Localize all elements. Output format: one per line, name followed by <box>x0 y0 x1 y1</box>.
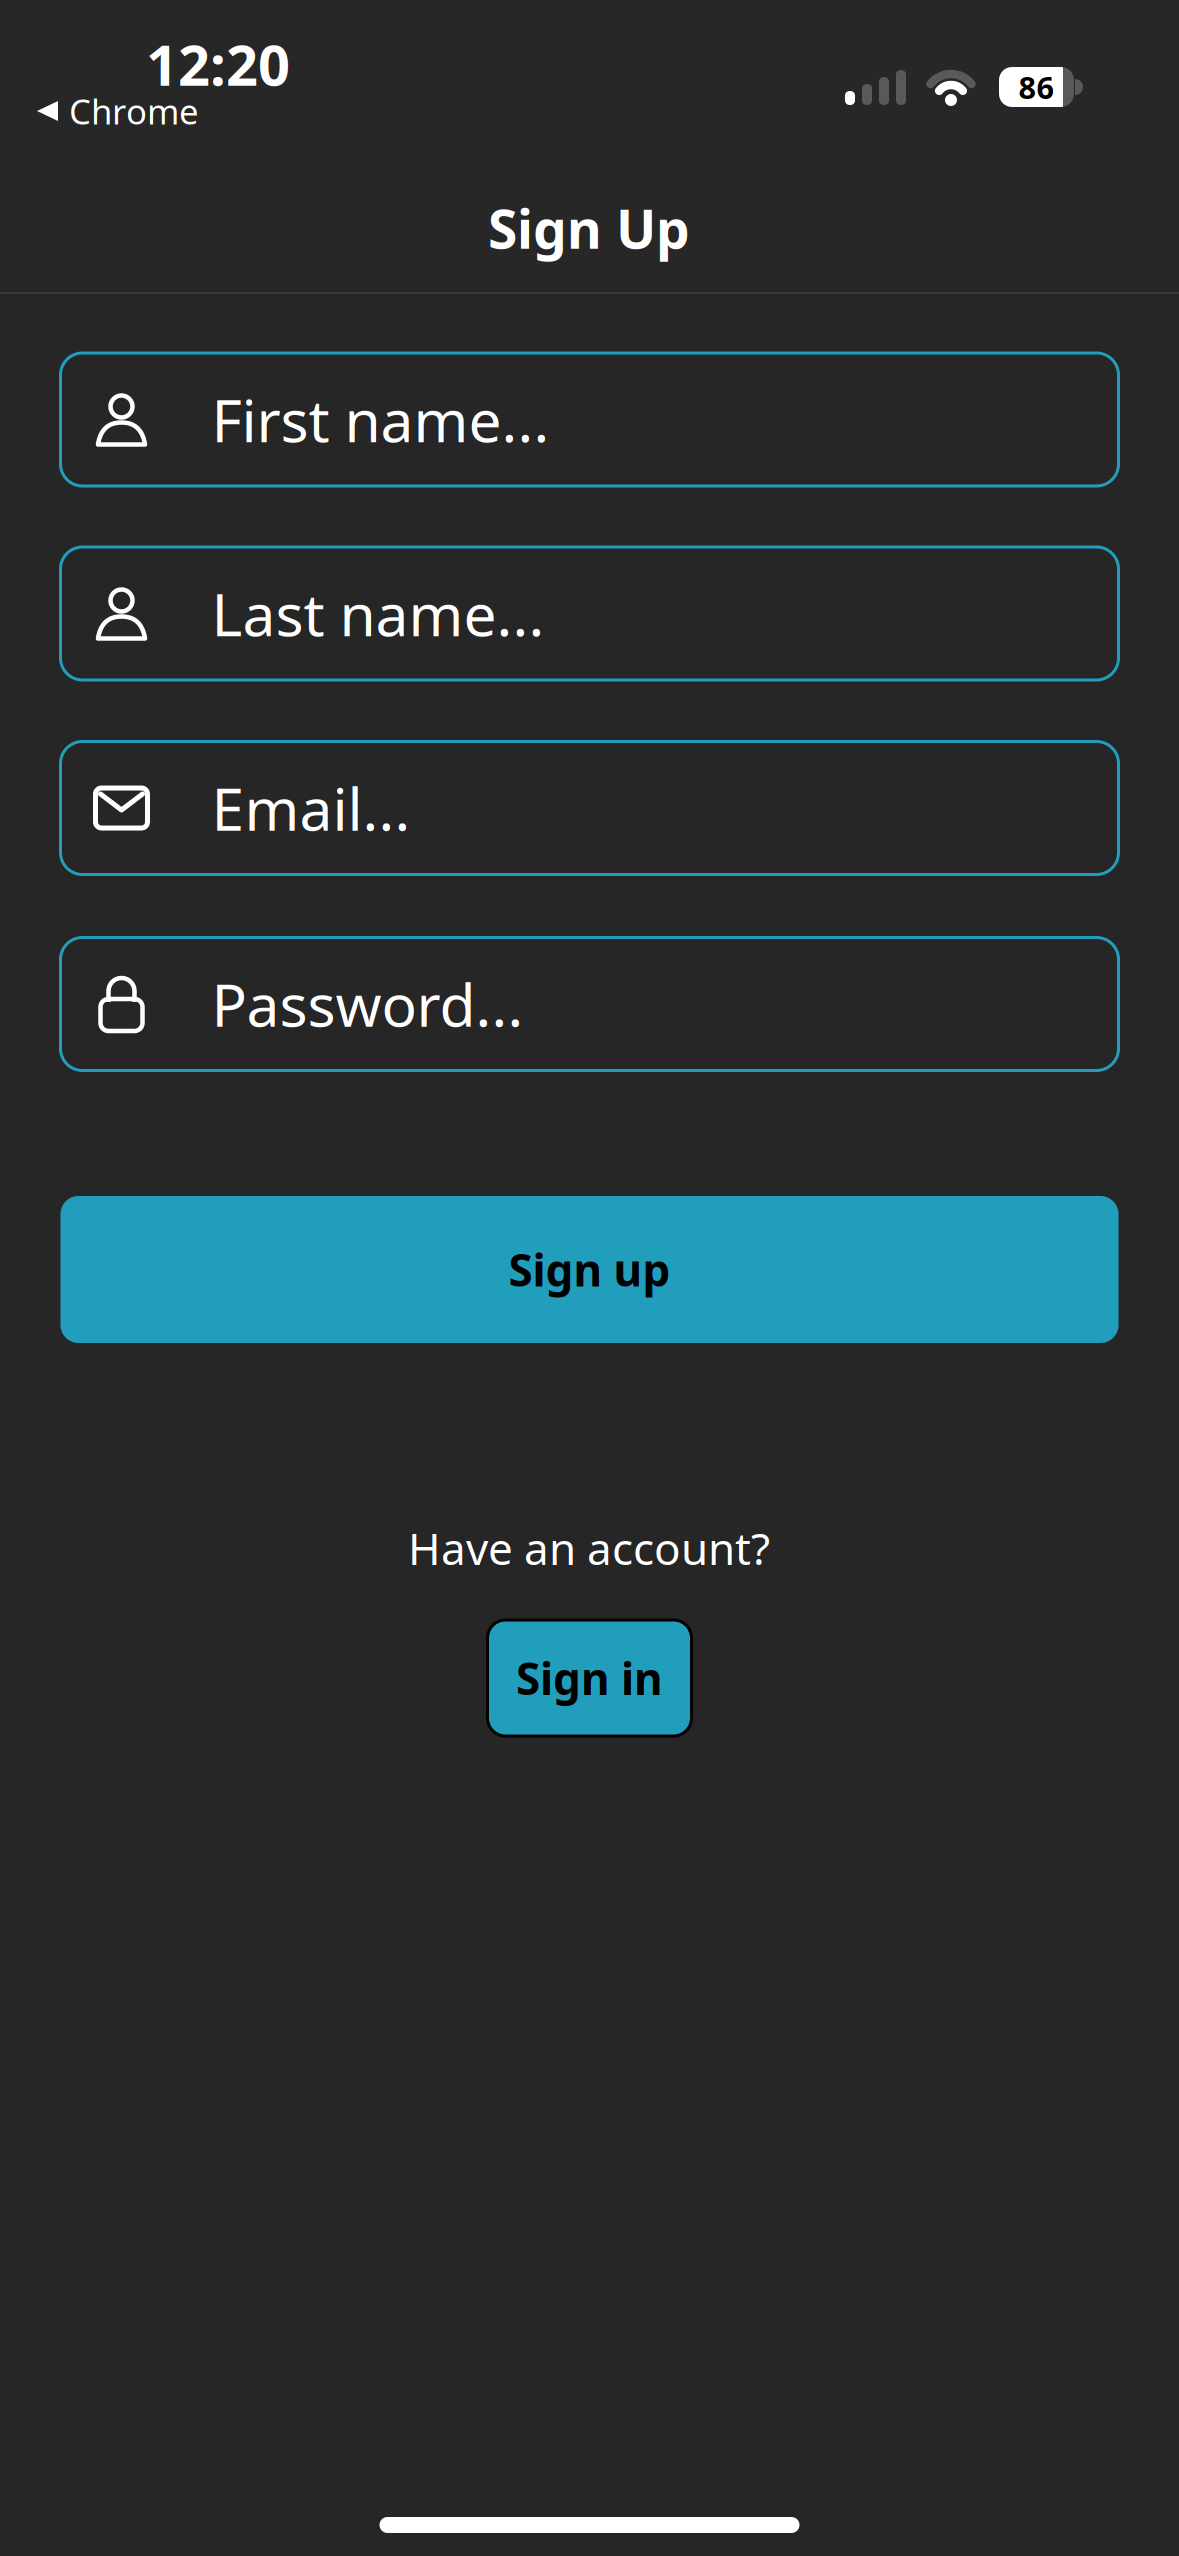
staticText: First name... <box>211 380 549 458</box>
staticText: Email... <box>211 769 410 847</box>
button[interactable]: Sign in <box>487 1620 691 1736</box>
staticText: Sign in <box>516 1649 663 1707</box>
staticText: Last name... <box>211 574 544 652</box>
button[interactable]: Email... <box>60 741 1118 874</box>
staticText: 12:20 <box>146 27 290 101</box>
staticText: 86 <box>1018 67 1054 107</box>
button[interactable]: Password... <box>60 937 1118 1070</box>
staticText: Chrome <box>69 88 199 134</box>
button[interactable]: Last name... <box>60 547 1118 680</box>
staticText: Sign Up <box>488 193 690 263</box>
button[interactable]: First name... <box>60 353 1118 486</box>
staticText: Sign up <box>508 1240 670 1299</box>
staticText: Have an account? <box>408 1519 770 1577</box>
button[interactable]: Sign up <box>60 1196 1118 1343</box>
staticText: Password... <box>211 965 523 1043</box>
button[interactable]: Back to Chrome <box>37 88 199 134</box>
